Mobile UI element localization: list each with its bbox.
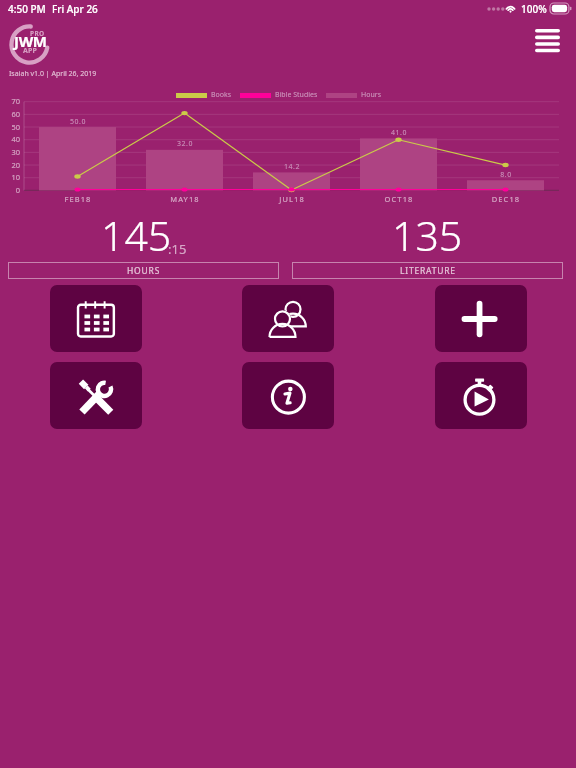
staticText: 135 (392, 207, 463, 263)
staticText: 70 (0, 96, 20, 106)
staticText: Bible Studies (275, 90, 318, 100)
staticText: 4:50 PM (8, 2, 46, 16)
staticText: 41.0 (369, 128, 429, 138)
staticText: 10 (0, 172, 20, 182)
staticText: HOURS (127, 265, 161, 277)
button[interactable]: Add (435, 285, 527, 352)
button[interactable]: Calendar (50, 285, 142, 352)
button[interactable]: Menu (528, 21, 566, 61)
button[interactable]: LITERATURE (292, 262, 563, 279)
staticText: PRO (30, 29, 45, 38)
staticText: Fri Apr 26 (52, 2, 98, 16)
staticText: 8.0 (476, 170, 536, 180)
staticText: Isaiah v1.0 | April 26, 2019 (9, 69, 97, 79)
staticText: 50.0 (48, 117, 108, 127)
staticText: 40 (0, 134, 20, 144)
staticText: DEC18 (476, 194, 536, 204)
staticText: 32.0 (155, 139, 215, 149)
staticText: 14.2 (262, 162, 322, 172)
staticText: Books (211, 90, 232, 100)
staticText: APP (23, 46, 38, 56)
staticText: FEB18 (48, 194, 108, 204)
staticText: MAY18 (155, 194, 215, 204)
button[interactable]: Info (242, 362, 334, 429)
staticText: JWM (14, 31, 47, 51)
staticText: 30 (0, 147, 20, 157)
staticText: Hours (361, 90, 381, 100)
button[interactable]: Timer (435, 362, 527, 429)
staticText: 145 (101, 207, 172, 263)
staticText: :15 (168, 240, 187, 258)
staticText: 50 (0, 122, 20, 132)
button[interactable]: HOURS (8, 262, 279, 279)
staticText: JUL18 (262, 194, 322, 204)
staticText: 60 (0, 109, 20, 119)
staticText: OCT18 (369, 194, 429, 204)
staticText: LITERATURE (400, 265, 456, 277)
staticText: 20 (0, 160, 20, 170)
button[interactable]: Contacts (242, 285, 334, 352)
staticText: 0 (0, 185, 20, 195)
staticText: 100% (521, 2, 547, 16)
button[interactable]: Tools (50, 362, 142, 429)
